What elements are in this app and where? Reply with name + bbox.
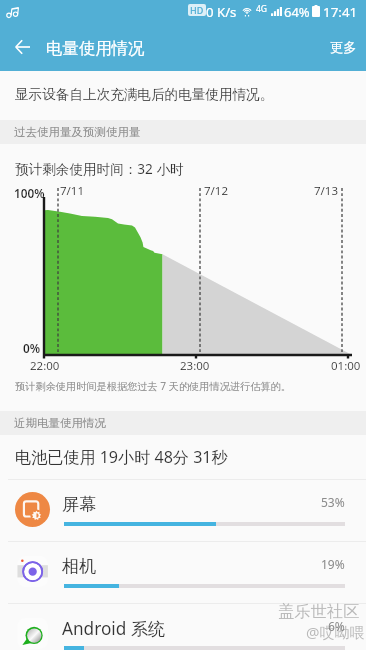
staticText: 7/11: [60, 183, 85, 199]
staticText: 更多: [330, 39, 357, 56]
staticText: 4G: [256, 3, 268, 15]
staticText: 23:00: [180, 358, 210, 374]
staticText: 01:00: [331, 358, 361, 374]
staticText: 相机: [62, 555, 97, 577]
staticText: 近期电量使用情况: [14, 416, 106, 430]
staticText: 22:00: [30, 358, 60, 374]
staticText: 19%: [321, 556, 345, 572]
staticText: 盖乐世社区: [278, 601, 360, 622]
staticText: 6%: [328, 618, 345, 634]
staticText: 64%: [284, 3, 310, 21]
staticText: 7/13: [314, 183, 339, 199]
staticText: 电池已使用 19小时 48分 31秒: [15, 446, 228, 468]
staticText: 预计剩余使用时间：32 小时: [15, 159, 184, 178]
staticText: 预计剩余使用时间是根据您过去 7 天的使用情况进行估算的。: [15, 379, 291, 393]
staticText: HD: [190, 4, 204, 16]
button[interactable]: 相机: [0, 542, 366, 604]
button[interactable]: 屏幕: [0, 480, 366, 542]
staticText: Android 系统: [62, 617, 166, 640]
staticText: 100%: [14, 185, 45, 201]
button[interactable]: 更多: [318, 29, 366, 66]
button[interactable]: Android 系统: [0, 604, 366, 650]
staticText: 电量使用情况: [46, 38, 145, 59]
staticText: 53%: [321, 494, 345, 510]
staticText: 屏幕: [62, 493, 97, 515]
staticText: 过去使用量及预测使用量: [14, 125, 141, 139]
staticText: @哎呦喂: [306, 622, 365, 642]
staticText: 0 K/s: [206, 3, 237, 21]
staticText: 0%: [23, 340, 41, 356]
staticText: 显示设备自上次充满电后的电量使用情况。: [15, 86, 274, 103]
button[interactable]: Back: [2, 27, 42, 67]
staticText: 7/12: [204, 183, 229, 199]
staticText: 17:41: [323, 3, 358, 21]
